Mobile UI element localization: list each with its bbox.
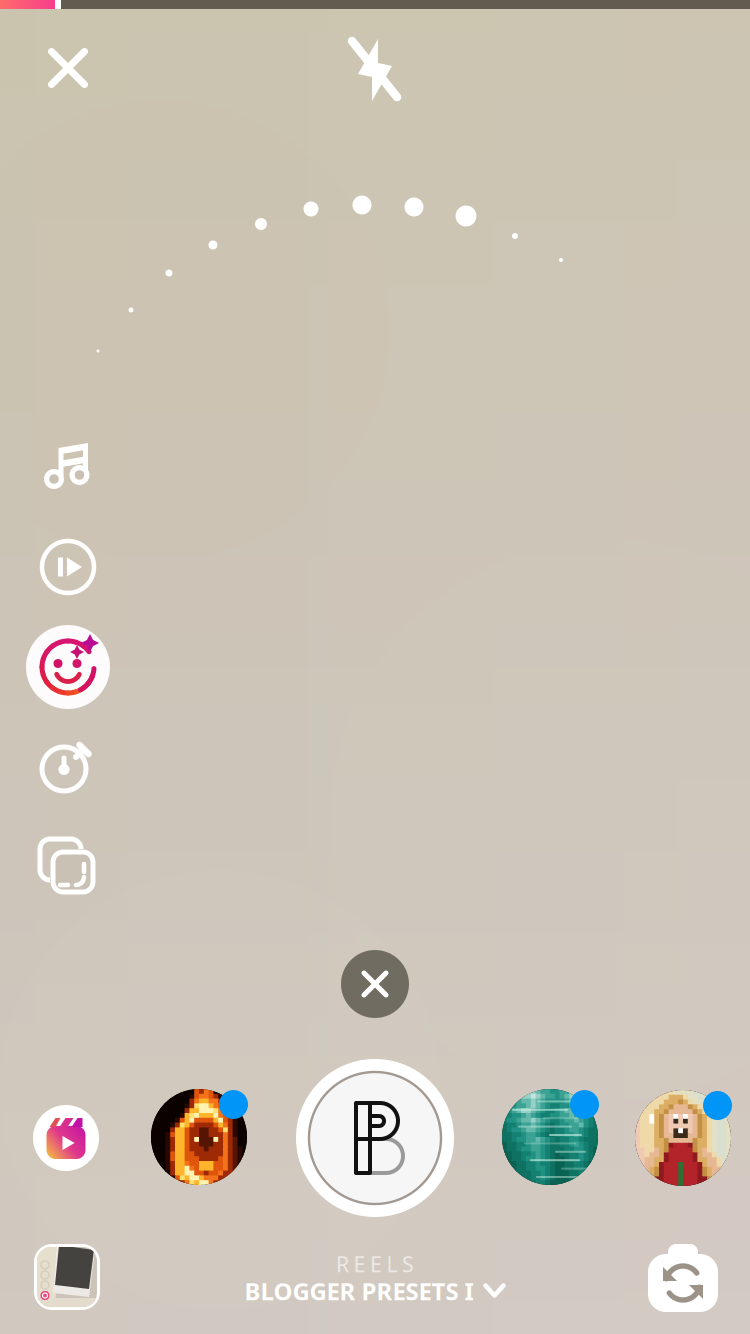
button[interactable]: Effects <box>26 625 110 709</box>
button[interactable]: Ocean effect <box>502 1089 600 1187</box>
button[interactable]: Blogger Presets I <box>296 1059 454 1217</box>
button[interactable]: Timer <box>30 730 104 804</box>
button[interactable]: Reels <box>33 1105 99 1171</box>
button[interactable]: Close <box>32 32 104 104</box>
button[interactable]: Fire effect <box>151 1089 249 1187</box>
staticText: BLOGGER PRESETS I <box>244 1275 473 1307</box>
button[interactable]: Flash off <box>339 34 411 106</box>
button[interactable]: Layout <box>31 830 105 904</box>
button[interactable]: Flip camera <box>647 1243 719 1313</box>
button[interactable]: Music <box>31 430 105 504</box>
button[interactable]: Face effect <box>635 1090 733 1188</box>
button[interactable]: Speed <box>31 530 105 604</box>
staticText: REELS <box>336 1250 414 1278</box>
button[interactable]: Close effects <box>341 950 409 1018</box>
button[interactable]: Gallery <box>34 1244 100 1310</box>
